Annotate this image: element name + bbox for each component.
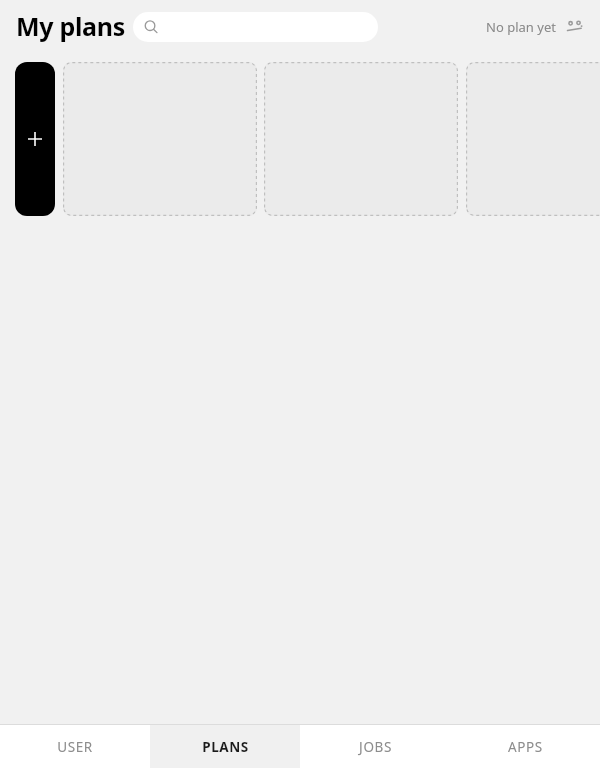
button[interactable]: Add plan: [15, 62, 55, 216]
button[interactable]: My plans: [14, 9, 127, 43]
button[interactable]: USER: [0, 725, 150, 768]
button[interactable]: PLANS: [150, 725, 300, 768]
button[interactable]: No plan yet: [484, 12, 588, 42]
staticText: My plans: [16, 9, 125, 43]
button[interactable]: Search plans: [133, 12, 378, 42]
button[interactable]: Empty plan slot: [264, 62, 458, 216]
button[interactable]: Empty plan slot: [466, 62, 600, 216]
staticText: No plan yet: [486, 18, 556, 36]
button[interactable]: Empty plan slot: [63, 62, 257, 216]
staticText: PLANS: [202, 738, 249, 756]
button[interactable]: APPS: [450, 725, 600, 768]
button[interactable]: JOBS: [300, 725, 450, 768]
staticText: USER: [57, 738, 93, 756]
staticText: JOBS: [359, 738, 392, 756]
staticText: APPS: [508, 738, 543, 756]
